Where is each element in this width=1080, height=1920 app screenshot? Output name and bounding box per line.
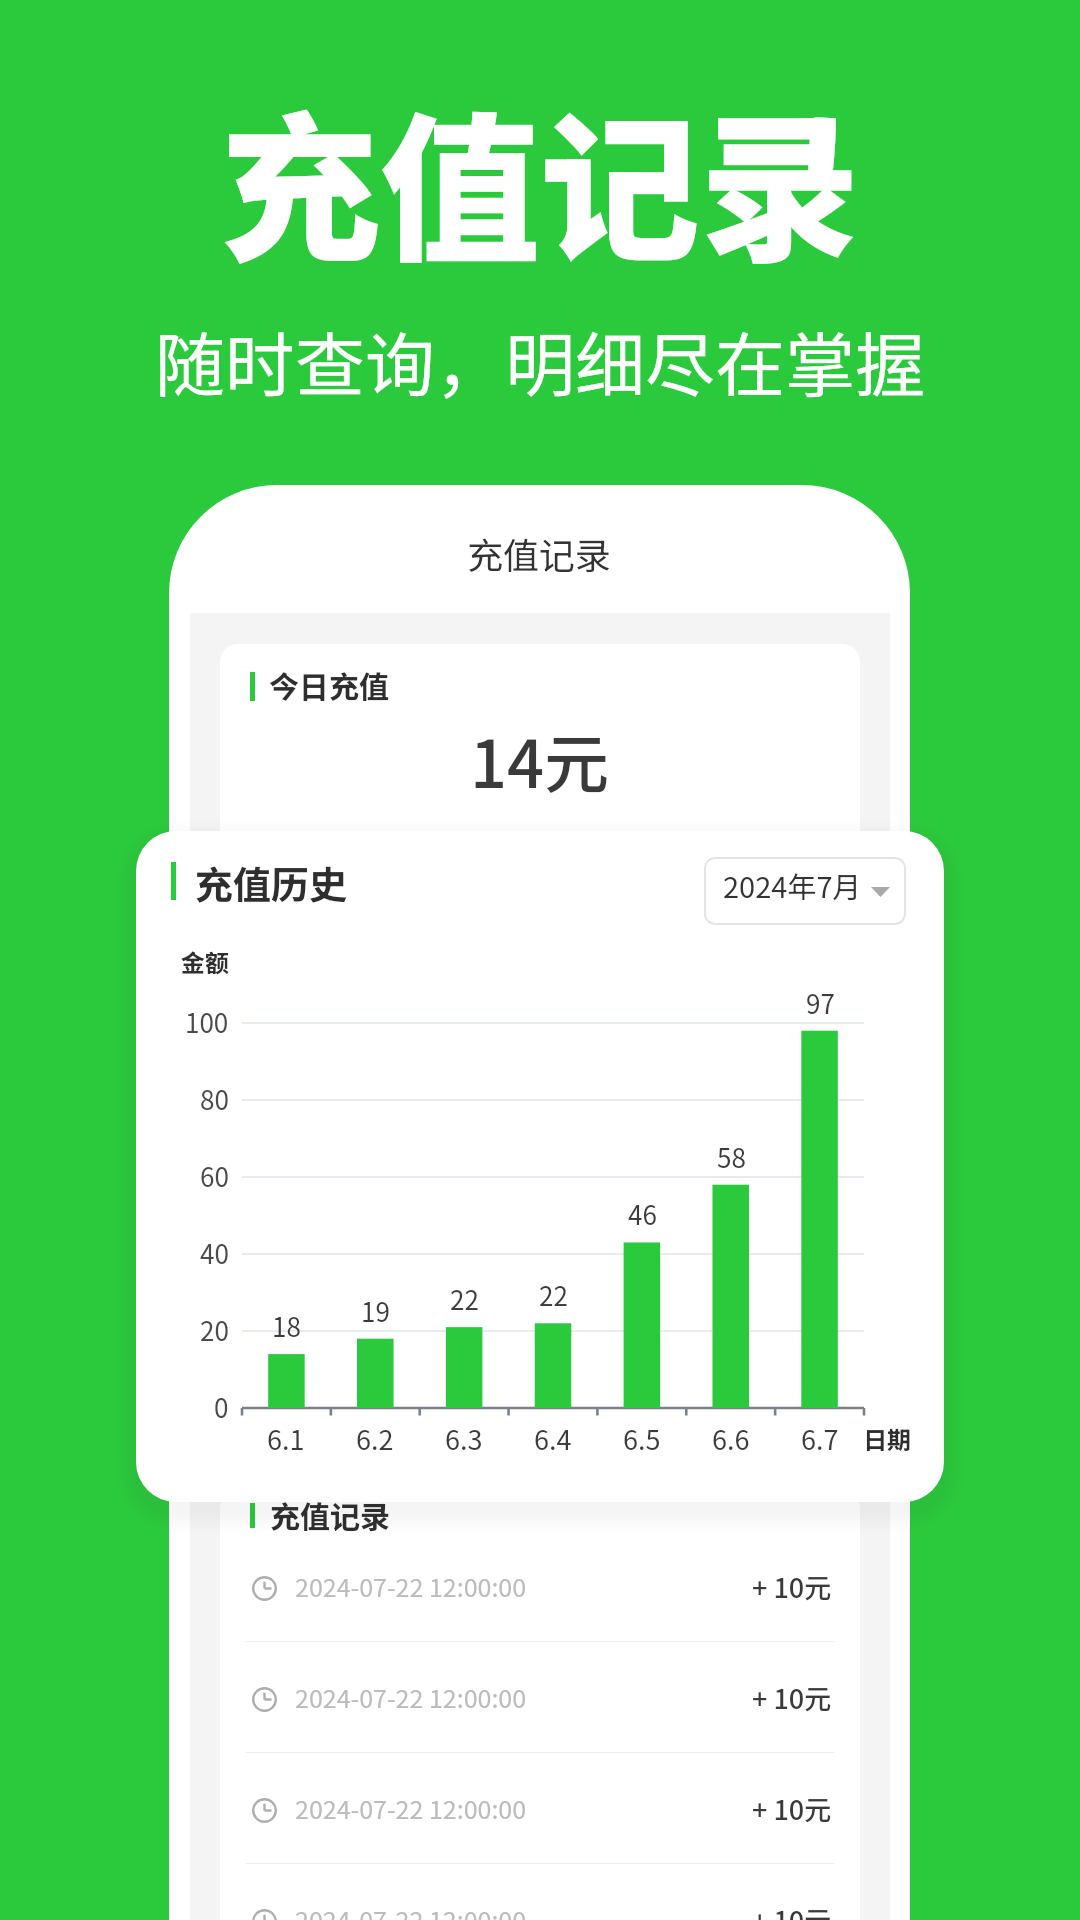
- staticText: 60: [200, 1157, 229, 1195]
- staticText: 6.5: [623, 1419, 661, 1458]
- staticText: 6.1: [267, 1419, 305, 1458]
- staticText: 40: [200, 1234, 229, 1272]
- button[interactable]: Select month 2024年7月: [704, 857, 906, 925]
- staticText: 18: [272, 1307, 301, 1345]
- button[interactable]: 今日充值: [220, 644, 860, 904]
- staticText: 充值记录: [467, 527, 612, 579]
- button[interactable]: 充值记录: [169, 485, 910, 613]
- staticText: 日期: [863, 1421, 911, 1456]
- staticText: 20: [200, 1311, 229, 1349]
- staticText: 充值记录: [270, 1493, 390, 1536]
- staticText: 6.7: [801, 1419, 839, 1458]
- staticText: 6.4: [534, 1419, 572, 1458]
- staticText: + 10元: [752, 1678, 832, 1717]
- staticText: 今日充值: [269, 663, 389, 706]
- staticText: 19: [361, 1292, 390, 1330]
- staticText: 46: [628, 1195, 657, 1233]
- staticText: + 10元: [752, 1567, 832, 1606]
- staticText: 6.2: [356, 1419, 394, 1458]
- button[interactable]: Time: [220, 1753, 860, 1863]
- button[interactable]: Time: [220, 1864, 860, 1920]
- staticText: 6.6: [712, 1419, 750, 1458]
- staticText: 充值历史: [195, 855, 348, 910]
- other: Time: [252, 1576, 277, 1601]
- staticText: 2024-07-22 12:00:00: [295, 1568, 527, 1604]
- staticText: 58: [717, 1138, 746, 1176]
- other: Time: [252, 1909, 277, 1920]
- staticText: 22: [539, 1276, 568, 1314]
- staticText: + 10元: [752, 1900, 832, 1920]
- staticText: 充值记录: [220, 62, 861, 294]
- staticText: 97: [806, 984, 835, 1022]
- staticText: 2024-07-22 12:00:00: [295, 1901, 527, 1920]
- staticText: 100: [185, 1003, 229, 1041]
- button[interactable]: Time: [220, 1531, 860, 1641]
- staticText: 6.3: [445, 1419, 483, 1458]
- staticText: 随时查询，明细尽在掌握: [155, 310, 925, 411]
- button[interactable]: Time: [220, 1642, 860, 1752]
- other: Time: [252, 1687, 277, 1712]
- other: Time: [252, 1798, 277, 1823]
- staticText: 2024年7月: [723, 864, 862, 906]
- staticText: 2024-07-22 12:00:00: [295, 1790, 527, 1826]
- staticText: 0: [214, 1388, 229, 1426]
- staticText: + 10元: [752, 1789, 832, 1828]
- staticText: 22: [450, 1280, 479, 1318]
- staticText: 80: [200, 1080, 229, 1118]
- staticText: 2024-07-22 12:00:00: [295, 1679, 527, 1715]
- staticText: 14元: [470, 713, 610, 807]
- staticText: 金额: [181, 944, 229, 979]
